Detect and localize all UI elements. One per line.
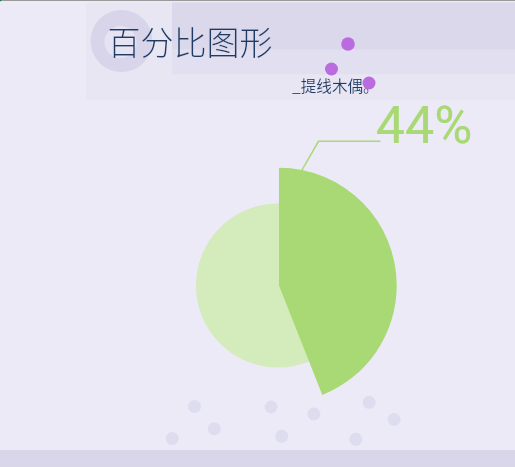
button[interactable]: 百分比图形 44%: [0, 0, 515, 467]
button[interactable]: [86, 2, 515, 100]
